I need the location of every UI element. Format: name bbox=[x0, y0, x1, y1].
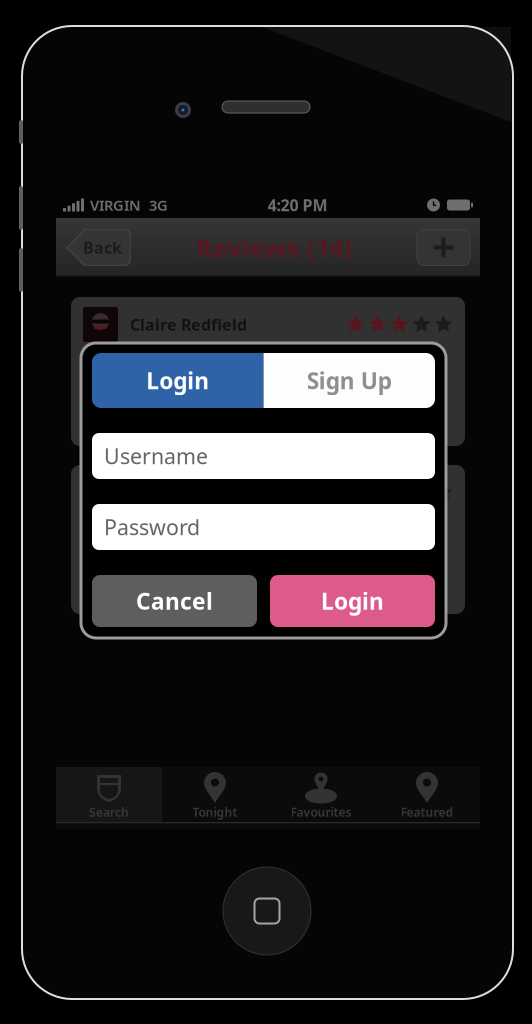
button[interactable]: Username bbox=[92, 433, 435, 479]
button[interactable]: Add review bbox=[417, 229, 470, 265]
staticText: Password bbox=[104, 513, 200, 541]
staticText: Lorem Ipsum is simply dummy text of the … bbox=[83, 519, 442, 604]
staticText: Lorem Ipsum is simply dummy text of the … bbox=[83, 351, 442, 436]
button[interactable]: Search bbox=[56, 767, 162, 822]
staticText: 3G bbox=[149, 195, 168, 215]
staticText: Login bbox=[321, 586, 384, 616]
staticText: Claire Redfield bbox=[130, 314, 247, 335]
staticText: VIRGIN bbox=[90, 195, 141, 215]
staticText: Favourites bbox=[290, 804, 351, 820]
staticText: Featured bbox=[400, 804, 453, 820]
staticText: Sign Up bbox=[307, 365, 392, 395]
staticText: Tonight bbox=[192, 804, 237, 820]
button[interactable]: Tonight bbox=[162, 767, 268, 822]
button[interactable]: Sign Up bbox=[263, 353, 435, 408]
staticText: Login bbox=[146, 365, 209, 395]
button[interactable]: Back bbox=[66, 229, 131, 266]
button[interactable]: Favourites bbox=[268, 767, 374, 822]
button[interactable]: Password bbox=[92, 504, 435, 550]
staticText: Back bbox=[83, 237, 122, 258]
staticText: Username bbox=[104, 442, 208, 470]
button[interactable]: Claire Redfield bbox=[71, 297, 465, 446]
button[interactable]: Cancel bbox=[92, 575, 257, 627]
button[interactable]: Leon S. Kennedy bbox=[71, 465, 465, 614]
staticText: Reviews (14) bbox=[195, 231, 352, 264]
button[interactable]: Login bbox=[92, 353, 263, 408]
button[interactable]: Login bbox=[270, 575, 435, 627]
staticText: Cancel bbox=[136, 586, 213, 616]
staticText: 4:20 PM bbox=[267, 194, 327, 216]
staticText: Search bbox=[89, 804, 129, 820]
button[interactable]: Featured bbox=[374, 767, 480, 822]
